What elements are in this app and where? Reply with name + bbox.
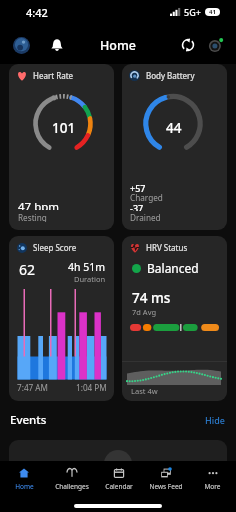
staticText: 44 bbox=[166, 119, 182, 137]
button[interactable]: Profile bbox=[13, 37, 30, 54]
staticText: News Feed bbox=[149, 482, 183, 491]
staticText: Calendar bbox=[105, 482, 133, 491]
button[interactable]: Calendar bbox=[95, 461, 142, 497]
staticText: 5G+ bbox=[184, 6, 201, 18]
staticText: 7d Avg bbox=[132, 307, 157, 317]
staticText: 4h 51m bbox=[68, 260, 106, 274]
button[interactable]: Devices bbox=[206, 36, 224, 54]
staticText: 47 bpm bbox=[18, 199, 60, 210]
staticText: 7:47 AM bbox=[17, 382, 49, 393]
staticText: Home bbox=[15, 482, 34, 491]
staticText: Heart Rate bbox=[33, 70, 74, 81]
staticText: Balanced bbox=[147, 260, 199, 276]
staticText: HRV Status bbox=[146, 242, 188, 253]
staticText: 74 ms bbox=[132, 289, 171, 307]
staticText: 1:04 PM bbox=[76, 382, 107, 393]
staticText: 62 bbox=[19, 260, 36, 279]
staticText: -37 bbox=[130, 202, 144, 211]
button[interactable]: Body Battery bbox=[122, 64, 227, 230]
staticText: Home bbox=[100, 37, 137, 54]
button[interactable]: More bbox=[189, 461, 236, 497]
staticText: Body Battery bbox=[146, 70, 195, 81]
button[interactable]: HRV Status bbox=[122, 236, 227, 401]
button[interactable]: Sync bbox=[178, 35, 198, 55]
button[interactable]: News Feed bbox=[142, 461, 189, 497]
staticText: Events bbox=[10, 412, 47, 428]
staticText: Hide bbox=[205, 414, 225, 426]
staticText: Drained bbox=[130, 212, 161, 223]
staticText: 4:42 bbox=[26, 5, 48, 20]
staticText: Charged bbox=[130, 192, 163, 203]
staticText: +57 bbox=[130, 182, 146, 192]
button[interactable]: Hide bbox=[203, 412, 227, 428]
button[interactable]: 7:47 AM bbox=[9, 236, 114, 401]
button[interactable]: Heart Rate bbox=[9, 64, 114, 230]
staticText: Duration bbox=[74, 274, 106, 284]
button[interactable]: Notifications bbox=[47, 35, 67, 55]
staticText: Sleep Score bbox=[33, 242, 77, 253]
button[interactable] bbox=[9, 440, 227, 480]
button[interactable]: Challenges bbox=[48, 461, 95, 497]
staticText: Challenges bbox=[55, 482, 89, 491]
staticText: Resting bbox=[18, 212, 47, 222]
staticText: 101 bbox=[52, 119, 76, 137]
staticText: More bbox=[204, 482, 221, 491]
staticText: Last 4w bbox=[131, 386, 158, 396]
staticText: 41 bbox=[209, 8, 216, 16]
button[interactable]: Home bbox=[0, 461, 48, 497]
